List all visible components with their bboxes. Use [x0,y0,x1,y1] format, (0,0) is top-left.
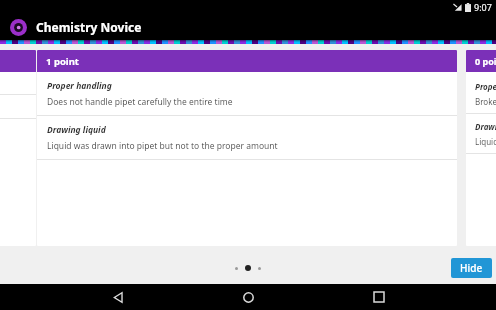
staticText: 1 point [46,55,79,68]
button[interactable]: 1 point [37,50,457,246]
staticText: Drawing liquid [47,124,106,136]
button[interactable]: Chemistry Novice [36,19,142,35]
staticText: Hide [460,261,483,275]
staticText: Liquid f [475,136,496,147]
button[interactable]: Back [105,284,131,310]
staticText: Liquid was drawn into pipet but not to t… [47,140,278,152]
button[interactable]: Hide [451,258,492,278]
button[interactable]: Home [235,284,261,310]
staticText: Broke p [475,96,496,107]
button[interactable]: 0 point [466,50,496,246]
staticText: Does not handle pipet carefully the enti… [47,96,233,108]
staticText: Proper h [475,81,496,92]
button[interactable]: Drawing liquid [37,116,457,159]
button[interactable]: Recents [366,284,392,310]
button[interactable]: Proper handling [37,72,457,115]
staticText: Drawing [475,121,496,132]
button[interactable]: App logo [10,19,27,36]
staticText: 0 point [475,55,496,67]
staticText: Proper handling [47,80,112,92]
button[interactable] [0,50,36,246]
staticText: 9:07 [474,1,492,13]
